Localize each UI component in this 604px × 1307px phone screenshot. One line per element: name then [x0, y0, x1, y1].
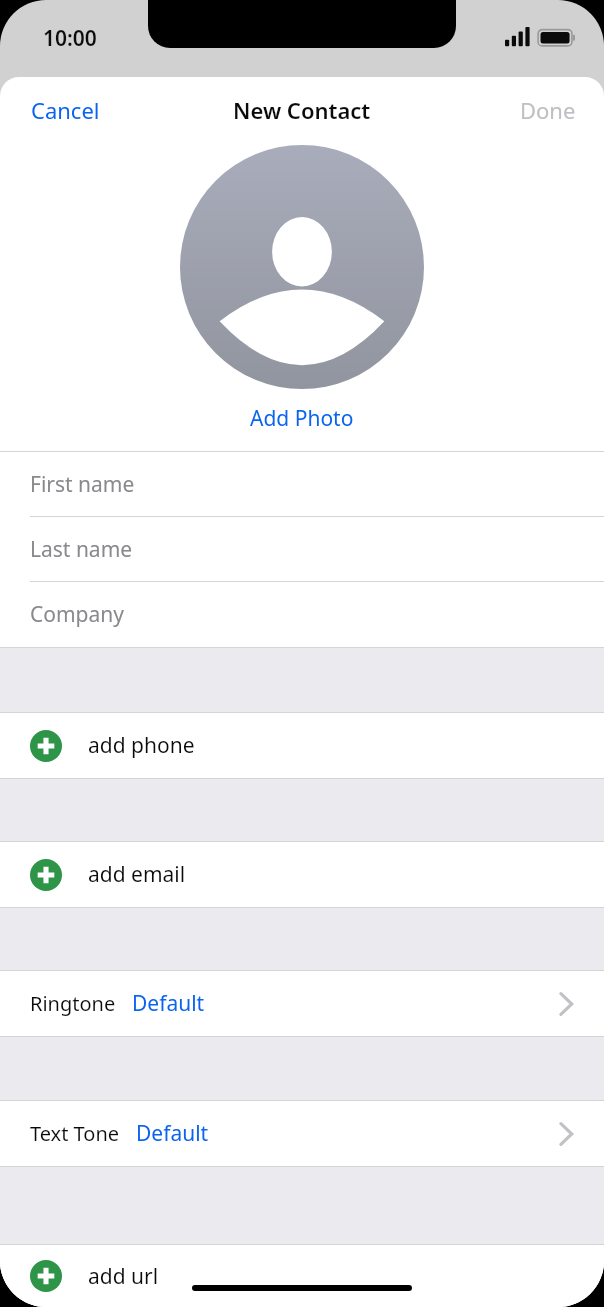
button[interactable]: First name — [0, 452, 604, 517]
button[interactable]: add url — [0, 1245, 604, 1307]
staticText: Last name — [30, 535, 133, 564]
button[interactable]: add phone — [0, 713, 604, 778]
button[interactable]: Add Photo — [236, 398, 368, 439]
button[interactable]: Ringtone — [0, 971, 604, 1036]
other: Open — [558, 991, 574, 1017]
staticText: add url — [88, 1262, 159, 1291]
staticText: add phone — [88, 731, 195, 760]
staticText: Cancel — [31, 95, 100, 125]
staticText: add email — [88, 860, 186, 889]
staticText: Text Tone — [30, 1120, 120, 1147]
staticText: Done — [520, 95, 576, 125]
button[interactable]: Done — [492, 85, 604, 135]
staticText: New Contact — [233, 95, 371, 125]
button[interactable]: Text Tone — [0, 1101, 604, 1166]
staticText: Default — [136, 1119, 209, 1148]
button[interactable]: Company — [0, 582, 604, 647]
staticText: Default — [132, 989, 205, 1018]
staticText: Ringtone — [30, 990, 116, 1017]
button[interactable]: add email — [0, 842, 604, 907]
button[interactable]: Last name — [0, 517, 604, 582]
staticText: First name — [30, 470, 135, 499]
staticText: Add Photo — [250, 404, 354, 433]
staticText: Company — [30, 600, 124, 629]
button[interactable]: Cancel — [0, 85, 131, 135]
staticText: 10:00 — [43, 24, 97, 53]
other: Add Photo — [180, 145, 424, 389]
other: Open — [558, 1121, 574, 1147]
